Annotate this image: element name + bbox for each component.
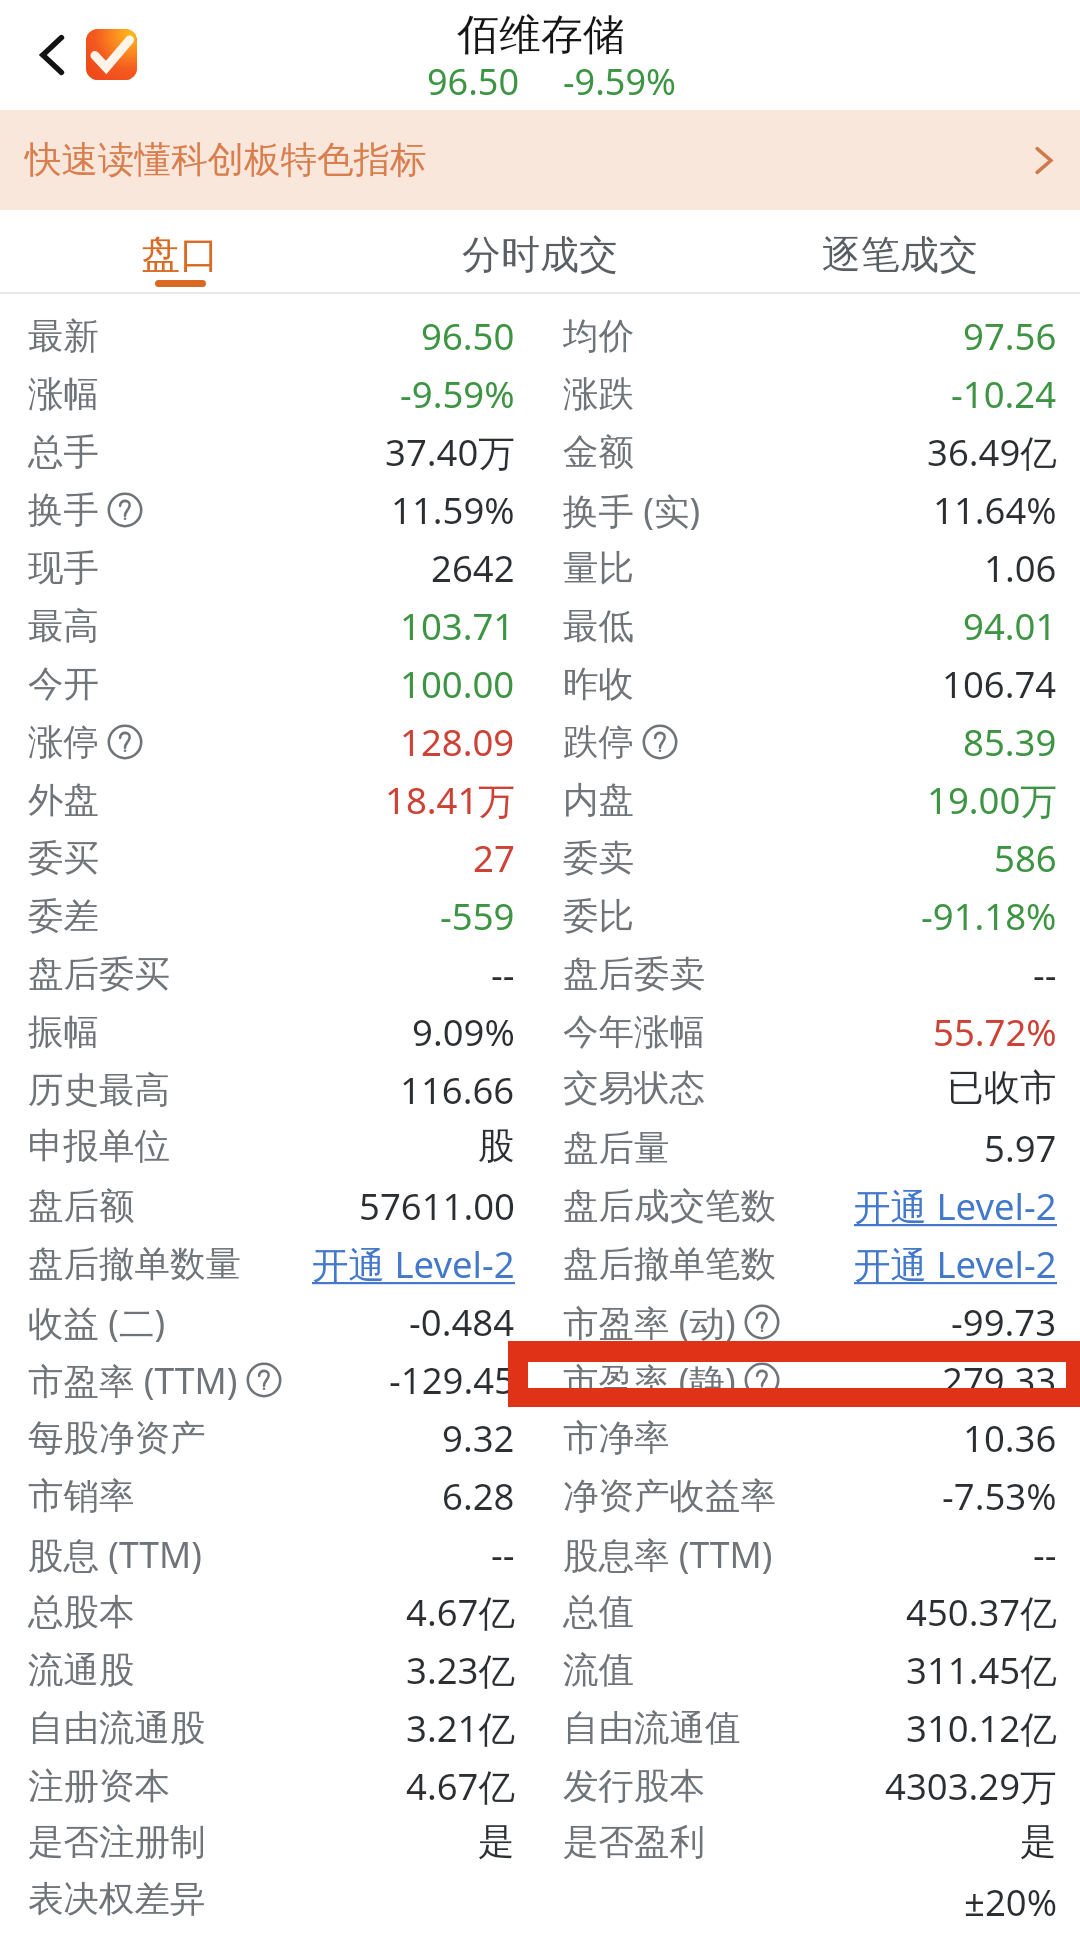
staticText: 自由流通值 [563, 1706, 741, 1751]
staticText: 流通股 [28, 1648, 135, 1693]
staticText: ±20% [964, 1877, 1057, 1927]
staticText: 57611.00 [359, 1181, 515, 1231]
staticText: 3.21亿 [406, 1703, 515, 1753]
button[interactable]: 总手 [0, 427, 1080, 485]
staticText: 6.28 [442, 1471, 515, 1521]
button[interactable]: 振幅 [0, 1007, 1080, 1065]
staticText: 总手 [28, 430, 99, 475]
button[interactable]: 盘后额 [0, 1181, 1080, 1239]
button[interactable]: 委差 [0, 891, 1080, 949]
button[interactable]: 总股本 [0, 1587, 1080, 1645]
staticText: 103.71 [400, 601, 515, 651]
button[interactable]: 最新 [0, 311, 1080, 369]
staticText: -99.73 [951, 1297, 1057, 1347]
staticText: 金额 [563, 430, 634, 475]
staticText: 10.36 [963, 1413, 1057, 1463]
staticText: 内盘 [563, 778, 634, 823]
button[interactable]: 换手 [0, 485, 1080, 543]
staticText: 注册资本 [28, 1764, 170, 1809]
staticText: 279.33 [942, 1355, 1057, 1405]
staticText: 委差 [28, 894, 99, 939]
button[interactable]: 收益 (二) [0, 1297, 1080, 1355]
staticText: 27 [473, 833, 515, 883]
staticText: 历史最高 [28, 1068, 170, 1113]
staticText: 3.23亿 [406, 1645, 515, 1695]
button[interactable]: 自由流通股 [0, 1703, 1080, 1761]
staticText: 流值 [563, 1648, 634, 1693]
staticText: 佰维存储 [457, 9, 625, 62]
staticText: 发行股本 [563, 1764, 705, 1809]
button[interactable]: Back [10, 10, 96, 96]
staticText: 最新 [28, 314, 99, 359]
staticText: -- [491, 1529, 515, 1579]
staticText: 盘后额 [28, 1184, 135, 1229]
button[interactable]: 每股净资产 [0, 1413, 1080, 1471]
staticText: 是否盈利 [563, 1820, 705, 1865]
staticText: 4.67亿 [406, 1587, 515, 1637]
staticText: -- [491, 949, 515, 999]
button[interactable]: 市销率 [0, 1471, 1080, 1529]
staticText: 今年涨幅 [563, 1010, 705, 1055]
staticText: 市销率 [28, 1474, 135, 1519]
button[interactable]: Stock app icon [86, 29, 137, 80]
staticText: 36.49亿 [927, 427, 1057, 477]
staticText: 分时成交 [462, 230, 618, 279]
staticText: 每股净资产 [28, 1416, 206, 1461]
staticText: 收益 (二) [28, 1298, 166, 1346]
button[interactable]: 现手 [0, 543, 1080, 601]
button[interactable]: 盘口 [0, 210, 360, 294]
button[interactable]: 外盘 [0, 775, 1080, 833]
staticText: 19.00万 [927, 775, 1057, 825]
button[interactable]: 历史最高 [0, 1065, 1080, 1123]
staticText: 盘后成交笔数 [563, 1184, 776, 1229]
staticText: 开通 Level-2 [854, 1239, 1057, 1289]
button[interactable]: 分时成交 [360, 210, 720, 294]
button[interactable]: 逐笔成交 [720, 210, 1080, 294]
staticText: 18.41万 [385, 775, 515, 825]
staticText: 11.64% [933, 485, 1057, 535]
button[interactable]: 快速读懂科创板特色指标 [0, 110, 1080, 210]
staticText: 100.00 [400, 659, 515, 709]
staticText: 最低 [563, 604, 634, 649]
staticText: 逐笔成交 [822, 230, 978, 279]
staticText: 股 [478, 1123, 515, 1169]
staticText: 股息率 (TTM) [563, 1530, 773, 1578]
staticText: 跌停 [563, 720, 634, 765]
button[interactable]: 盘后委买 [0, 949, 1080, 1007]
staticText: 委买 [28, 836, 99, 881]
staticText: 净资产收益率 [563, 1474, 776, 1519]
staticText: 是否注册制 [28, 1820, 206, 1865]
button[interactable]: 盘后撤单数量 [0, 1239, 1080, 1297]
button[interactable]: 表决权差异 [0, 1877, 1080, 1935]
staticText: 交易状态 [563, 1066, 705, 1111]
button[interactable]: 最高 [0, 601, 1080, 659]
staticText: 311.45亿 [906, 1645, 1057, 1695]
staticText: 最高 [28, 604, 99, 649]
staticText: 盘后撤单笔数 [563, 1242, 776, 1287]
button[interactable]: 今开 [0, 659, 1080, 717]
staticText: 总值 [563, 1590, 634, 1635]
button[interactable]: 是否注册制 [0, 1819, 1080, 1877]
button[interactable]: 流通股 [0, 1645, 1080, 1703]
staticText: 快速读懂科创板特色指标 [25, 137, 427, 183]
button[interactable]: 注册资本 [0, 1761, 1080, 1819]
staticText: -9.59% [400, 369, 515, 419]
button[interactable]: 股息 (TTM) [0, 1529, 1080, 1587]
staticText: 开通 Level-2 [312, 1239, 515, 1289]
button[interactable]: 涨停 [0, 717, 1080, 775]
staticText: 已收市 [947, 1065, 1057, 1111]
staticText: 2642 [431, 543, 515, 593]
button[interactable]: 市盈率 (TTM) [0, 1355, 1080, 1413]
staticText: -559 [440, 891, 515, 941]
staticText: -129.45 [389, 1355, 515, 1405]
button[interactable]: 委买 [0, 833, 1080, 891]
staticText: 振幅 [28, 1010, 99, 1055]
staticText: 涨跌 [563, 372, 634, 417]
staticText: -- [1033, 1529, 1057, 1579]
button[interactable]: 涨幅 [0, 369, 1080, 427]
button[interactable]: 申报单位 [0, 1123, 1080, 1181]
staticText: 85.39 [963, 717, 1057, 767]
staticText: -0.484 [409, 1297, 515, 1347]
staticText: 今开 [28, 662, 99, 707]
staticText: 96.50 [421, 311, 515, 361]
